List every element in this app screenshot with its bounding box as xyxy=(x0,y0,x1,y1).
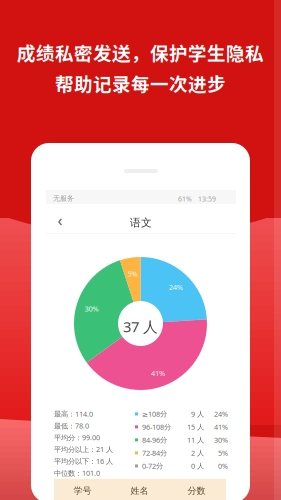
button[interactable]: Back xyxy=(52,212,68,228)
staticText: 0% xyxy=(218,461,228,471)
staticText: 0-72分 xyxy=(142,461,163,471)
staticText: 5% xyxy=(218,448,228,458)
staticText: 72-84分 xyxy=(142,448,167,458)
staticText: 30% xyxy=(84,304,98,314)
staticText: ‹ xyxy=(57,209,62,231)
staticText: 无服务 xyxy=(53,194,74,203)
staticText: 及格率：100.00% xyxy=(54,480,110,490)
staticText: 24% xyxy=(214,409,228,419)
staticText: 分数 xyxy=(187,485,205,496)
staticText: 11 人 xyxy=(187,435,204,445)
staticText: 37 人 xyxy=(123,316,158,336)
staticText: 61% 13:59 xyxy=(178,194,216,203)
staticText: 30% xyxy=(214,435,228,445)
staticText: 平均分以上：21 人 xyxy=(54,444,113,454)
staticText: 24% xyxy=(169,282,183,292)
staticText: 学号 xyxy=(73,485,91,496)
staticText: 最低：78.0 xyxy=(54,421,89,431)
staticText: 姓名 xyxy=(130,485,148,496)
staticText: 15 人 xyxy=(187,422,204,432)
staticText: ≥108分 xyxy=(142,409,167,419)
staticText: 41% xyxy=(214,422,228,432)
staticText: 9 人 xyxy=(191,409,204,419)
staticText: 帮助记录每一次进步 xyxy=(55,70,226,97)
staticText: 2 人 xyxy=(191,448,204,458)
staticText: 平均分：99.00 xyxy=(54,433,100,442)
staticText: 41% xyxy=(151,368,165,378)
staticText: 成绩私密发送，保护学生隐私 xyxy=(17,39,264,66)
staticText: 中位数：101.0 xyxy=(54,468,100,478)
staticText: 平均分以下：16 人 xyxy=(54,456,113,466)
staticText: 0 人 xyxy=(191,461,204,471)
staticText: 5% xyxy=(127,269,137,279)
staticText: 96-108分 xyxy=(142,422,171,432)
staticText: 语文 xyxy=(130,216,152,229)
staticText: 最高：114.0 xyxy=(54,409,93,419)
staticText: 84-96分 xyxy=(142,435,167,445)
